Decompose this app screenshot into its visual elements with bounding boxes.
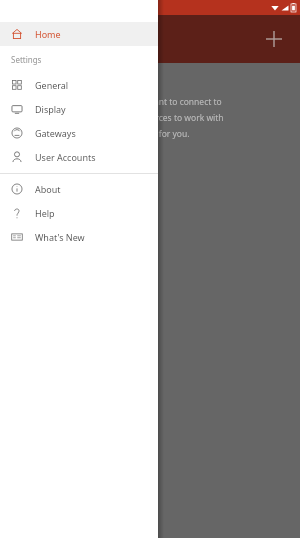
button[interactable]: Home: [0, 22, 158, 46]
button[interactable]: Display: [0, 97, 158, 121]
staticText: General: [35, 79, 69, 91]
staticText: User Accounts: [35, 151, 96, 163]
button[interactable]: Add: [256, 21, 292, 57]
button[interactable]: Help: [0, 201, 158, 225]
button[interactable]: User Accounts: [0, 145, 158, 169]
button[interactable]: General: [0, 73, 158, 97]
staticText: Settings: [11, 54, 42, 65]
staticText: About: [35, 183, 61, 195]
staticText: Gateways: [35, 127, 76, 139]
button[interactable]: What's New: [0, 225, 158, 249]
staticText: Display: [35, 103, 66, 115]
button[interactable]: Gateways: [0, 121, 158, 145]
staticText: Help: [35, 207, 55, 219]
staticText: What's New: [35, 231, 85, 243]
staticText: Home: [35, 28, 61, 40]
staticText: that your administrator has set up for y…: [20, 128, 190, 140]
button[interactable]: About: [0, 177, 158, 201]
staticText: Select the PC or server that you want to…: [20, 96, 222, 108]
staticText: or the workspace of remote resources to …: [20, 112, 224, 124]
